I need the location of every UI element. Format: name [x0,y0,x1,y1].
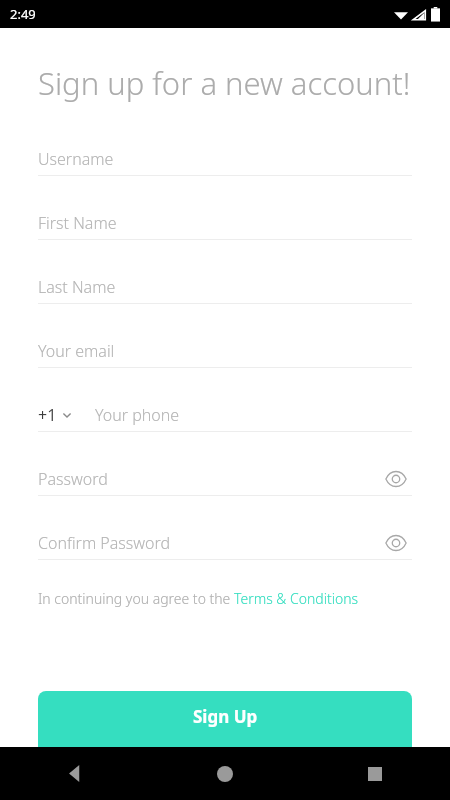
staticText: Username [38,148,114,170]
button[interactable]: Your email [38,325,412,389]
staticText: Sign Up [193,705,258,728]
button[interactable]: +1 [38,404,73,426]
button[interactable]: Show password [380,463,412,495]
button[interactable]: First Name [38,197,412,261]
staticText: Password [38,468,108,490]
button[interactable]: Your phone [95,404,180,426]
staticText: Last Name [38,276,116,298]
staticText: 2:49 [10,5,36,23]
staticText: Confirm Password [38,532,171,554]
button[interactable]: In continuing you agree to the Terms & C… [38,589,359,608]
button[interactable]: Last Name [38,261,412,325]
button[interactable]: Recent apps [300,747,450,800]
button[interactable]: Back [0,747,150,800]
button[interactable]: Username [38,133,412,197]
staticText: First Name [38,212,117,234]
button[interactable]: Home [150,747,300,800]
staticText: +1 [38,404,57,426]
button[interactable]: Confirm Password [38,517,412,581]
button[interactable]: Password [38,453,412,517]
staticText: Your email [38,340,115,362]
button[interactable]: Sign Up [38,691,412,747]
button[interactable]: Show password [380,527,412,559]
staticText: Sign up for a new account! [38,62,411,104]
